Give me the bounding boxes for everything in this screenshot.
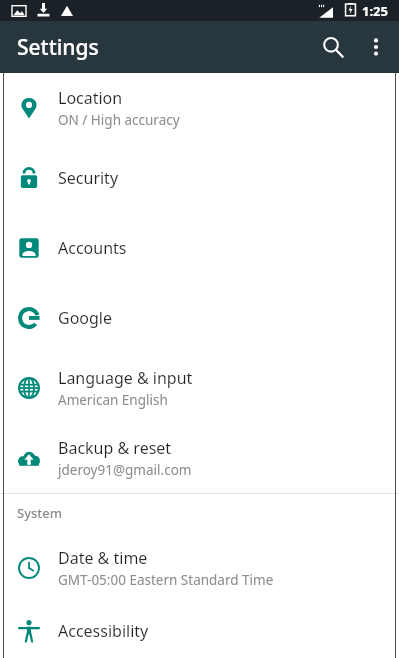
- button[interactable]: Security: [0, 143, 399, 213]
- staticText: jderoy91@gmail.com: [58, 461, 192, 479]
- button[interactable]: Accounts: [0, 213, 399, 283]
- staticText: GMT-05:00 Eastern Standard Time: [58, 571, 274, 589]
- button[interactable]: Backup & reset: [0, 423, 399, 493]
- staticText: Accessibility: [58, 620, 149, 642]
- button[interactable]: Language & input: [0, 353, 399, 423]
- staticText: Settings: [17, 33, 99, 62]
- button[interactable]: Google: [0, 283, 399, 353]
- button[interactable]: Accessibility: [0, 604, 399, 658]
- staticText: Location: [58, 87, 123, 109]
- staticText: Language & input: [58, 367, 193, 389]
- button[interactable]: Date & time: [0, 532, 399, 604]
- staticText: Google: [58, 307, 113, 329]
- staticText: Backup & reset: [58, 437, 172, 459]
- staticText: Security: [58, 167, 119, 189]
- staticText: ON / High accuracy: [58, 111, 180, 129]
- staticText: 1:25: [362, 2, 388, 20]
- button[interactable]: Search: [311, 25, 355, 69]
- staticText: Date & time: [58, 547, 148, 569]
- staticText: System: [17, 504, 63, 522]
- staticText: Accounts: [58, 237, 127, 259]
- button[interactable]: Location: [0, 73, 399, 143]
- staticText: American English: [58, 391, 168, 409]
- button[interactable]: More options: [356, 27, 396, 67]
